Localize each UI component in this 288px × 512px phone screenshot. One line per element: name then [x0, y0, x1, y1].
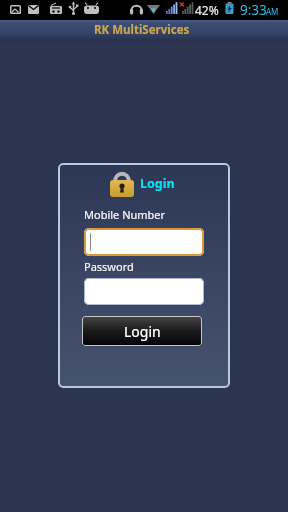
button[interactable]	[84, 228, 204, 256]
staticText: AM	[266, 6, 279, 17]
staticText: Login	[140, 175, 175, 192]
staticText: Mobile Number	[84, 207, 166, 222]
staticText: 9:33	[240, 1, 267, 19]
staticText: RK MultiServices	[94, 22, 190, 38]
button[interactable]: Login	[82, 316, 202, 346]
staticText: Login	[124, 322, 161, 341]
button[interactable]	[84, 278, 204, 305]
staticText: 42%	[195, 2, 219, 18]
staticText: Password	[84, 259, 134, 274]
